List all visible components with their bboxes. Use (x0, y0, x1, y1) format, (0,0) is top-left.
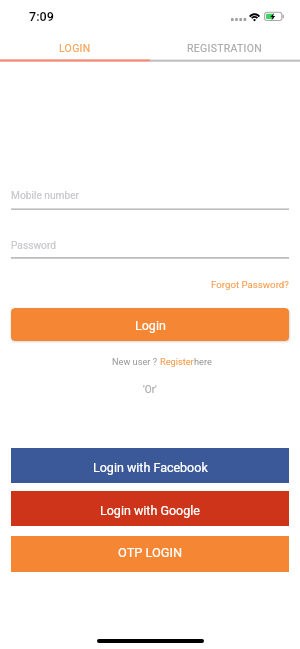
staticText: Login (135, 318, 166, 333)
staticText: OTP LOGIN (118, 545, 183, 560)
staticText: Password (11, 240, 56, 252)
staticText: Mobile number (11, 190, 80, 202)
staticText: REGISTRATION (187, 42, 263, 54)
button[interactable]: Register (160, 356, 194, 367)
staticText: 'Or' (143, 384, 157, 396)
button[interactable]: Login with Facebook (11, 448, 289, 483)
button[interactable]: OTP LOGIN (11, 536, 289, 572)
button[interactable]: REGISTRATION (150, 36, 300, 59)
staticText: LOGIN (59, 42, 91, 54)
staticText: Login with Facebook (93, 460, 208, 475)
button[interactable]: Forgot Password? (211, 279, 289, 290)
button[interactable]: Login (11, 308, 289, 341)
button[interactable]: Login with Google (11, 491, 289, 526)
button[interactable]: LOGIN (0, 36, 150, 59)
staticText: Login with Google (100, 503, 200, 518)
staticText: 7:09 (29, 9, 54, 24)
staticText: New user ? (112, 356, 160, 367)
staticText: here (194, 356, 212, 367)
